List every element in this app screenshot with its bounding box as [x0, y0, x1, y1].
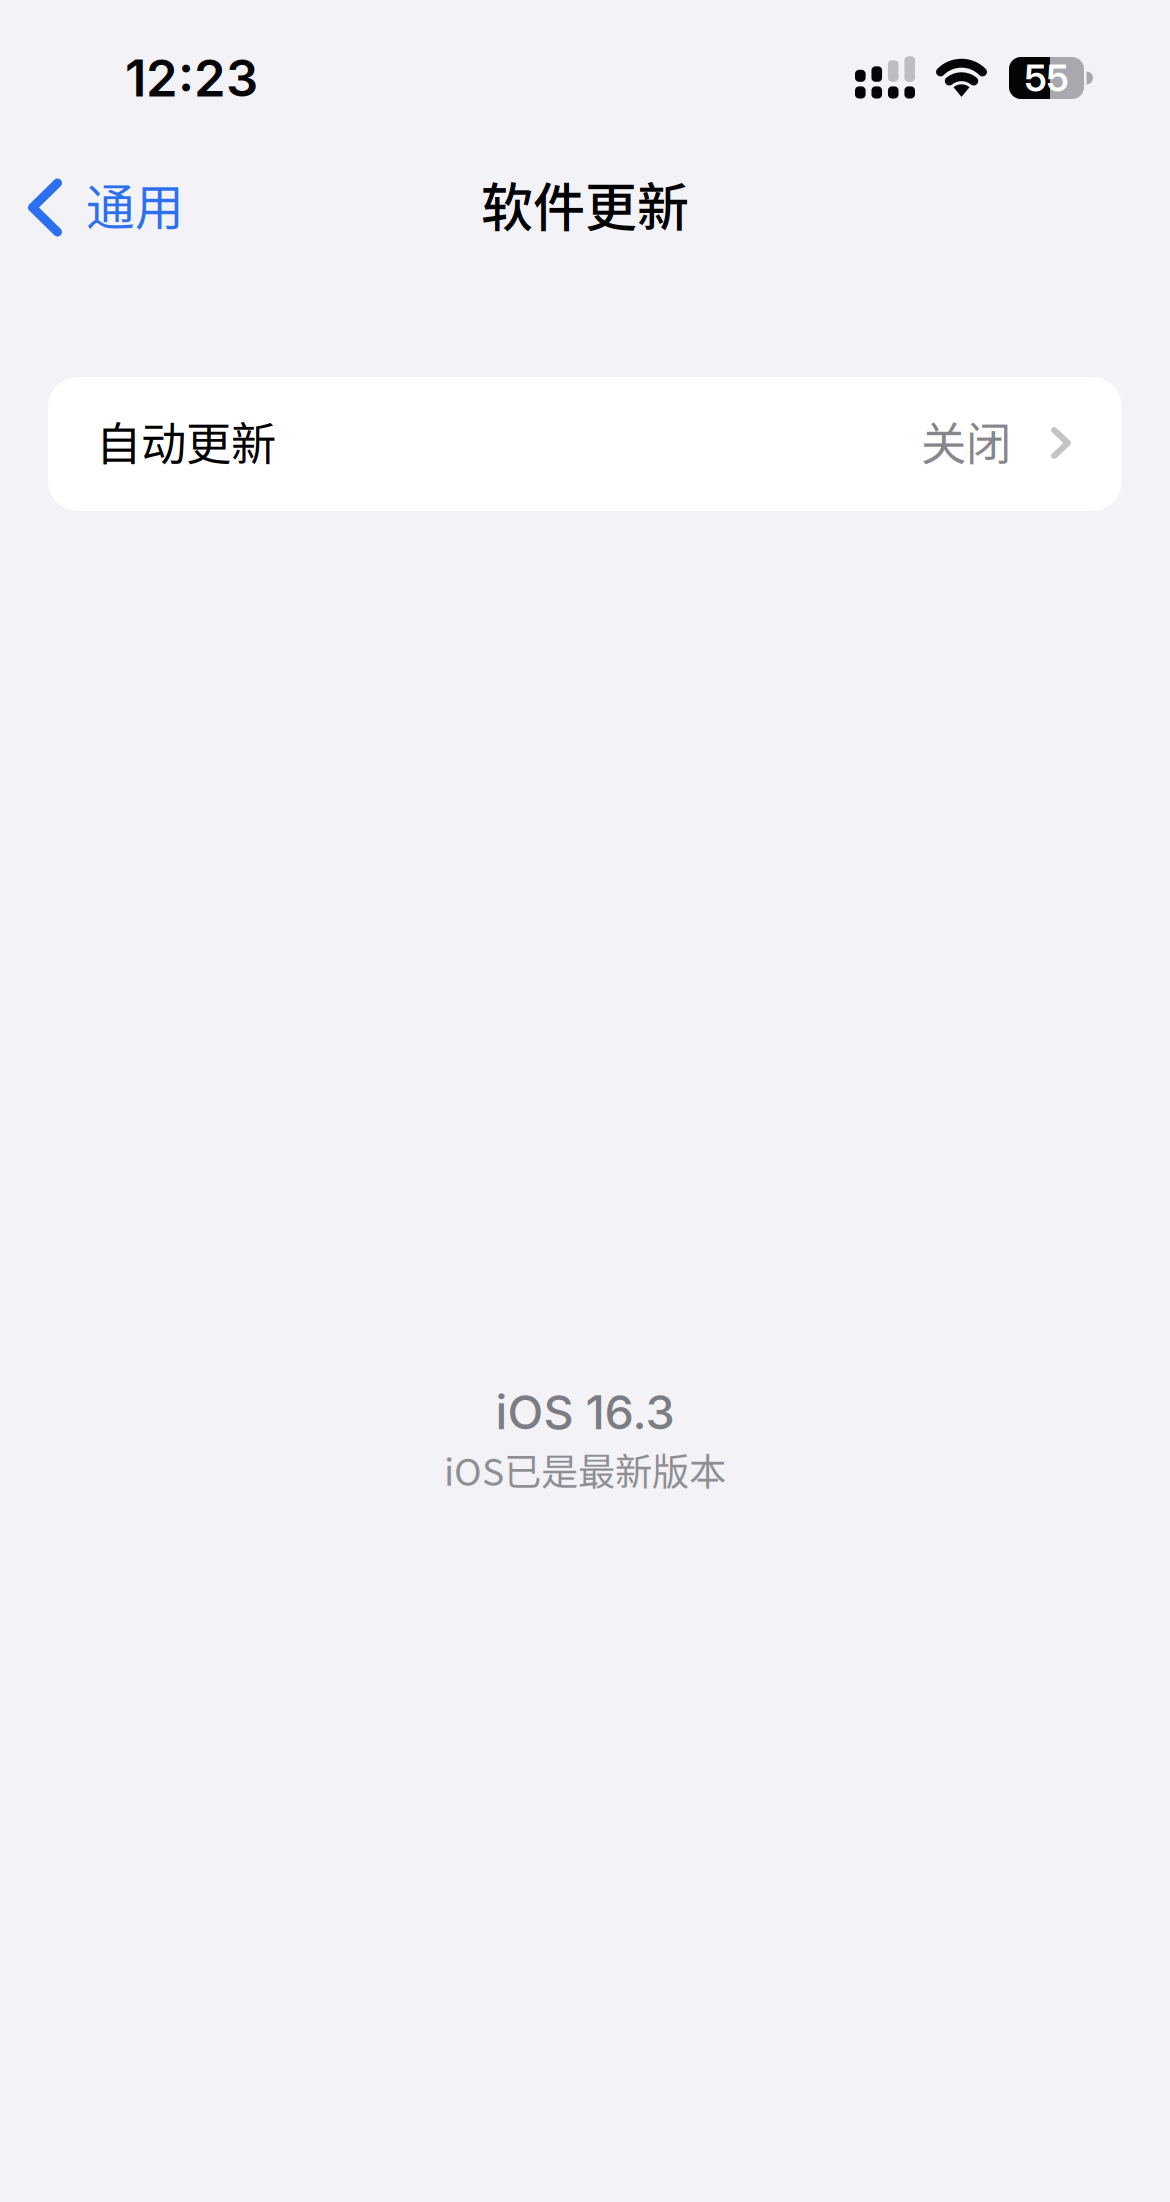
staticText: 55	[1024, 55, 1068, 101]
staticText: 通用	[86, 169, 184, 239]
staticText: 自动更新	[96, 408, 276, 474]
staticText: iOS 16.3	[495, 1384, 674, 1440]
staticText: 软件更新	[481, 166, 689, 242]
staticText: iOS已是最新版本	[444, 1442, 726, 1497]
staticText: 关闭	[921, 408, 1011, 474]
button[interactable]: 通用	[0, 160, 204, 248]
staticText: 12:23	[125, 47, 258, 109]
button[interactable]: 自动更新	[48, 377, 1122, 511]
